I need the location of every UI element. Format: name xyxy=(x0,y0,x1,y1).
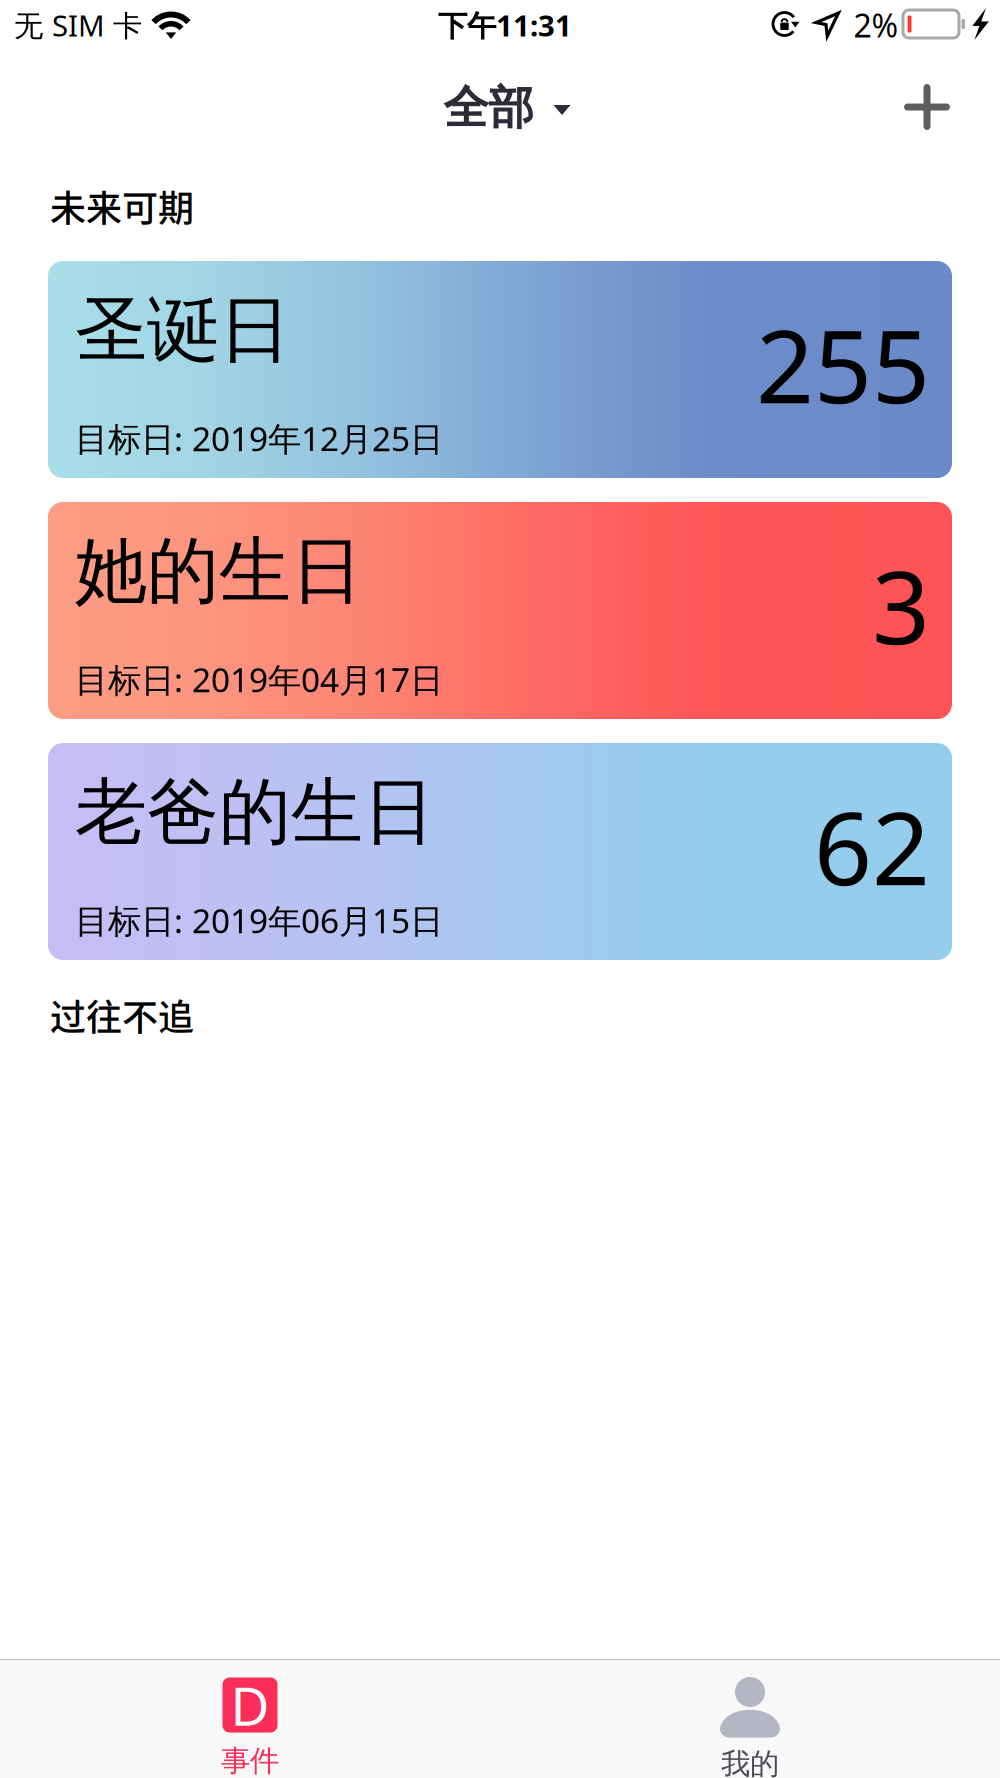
staticText: 无 SIM 卡 xyxy=(14,5,142,45)
staticText: 未来可期 xyxy=(50,180,194,232)
button[interactable]: 全部 xyxy=(427,65,586,150)
staticText: 事件 xyxy=(221,1742,279,1778)
staticText: 目标日: 2019年04月17日 xyxy=(75,657,443,702)
staticText: 下午11:31 xyxy=(438,5,572,45)
staticText: 2% xyxy=(853,3,898,47)
button[interactable]: 老爸的生日 xyxy=(48,743,952,960)
staticText: D xyxy=(230,1669,269,1741)
staticText: 目标日: 2019年06月15日 xyxy=(75,898,443,943)
button[interactable]: 她的生日 xyxy=(48,502,952,719)
staticText: 过往不追 xyxy=(50,989,194,1041)
button[interactable]: D xyxy=(0,1660,500,1778)
staticText: 她的生日 xyxy=(75,526,363,617)
staticText: 62 xyxy=(814,777,930,915)
staticText: 老爸的生日 xyxy=(75,767,435,858)
staticText: 3 xyxy=(872,536,930,674)
staticText: 圣诞日 xyxy=(75,285,291,376)
staticText: 我的 xyxy=(721,1745,779,1778)
button[interactable]: 我的 xyxy=(500,1660,1000,1778)
staticText: 全部 xyxy=(443,79,533,136)
button[interactable]: 新建 xyxy=(882,64,972,150)
button[interactable]: 圣诞日 xyxy=(48,261,952,478)
staticText: 255 xyxy=(756,295,930,433)
staticText: 目标日: 2019年12月25日 xyxy=(75,416,443,461)
